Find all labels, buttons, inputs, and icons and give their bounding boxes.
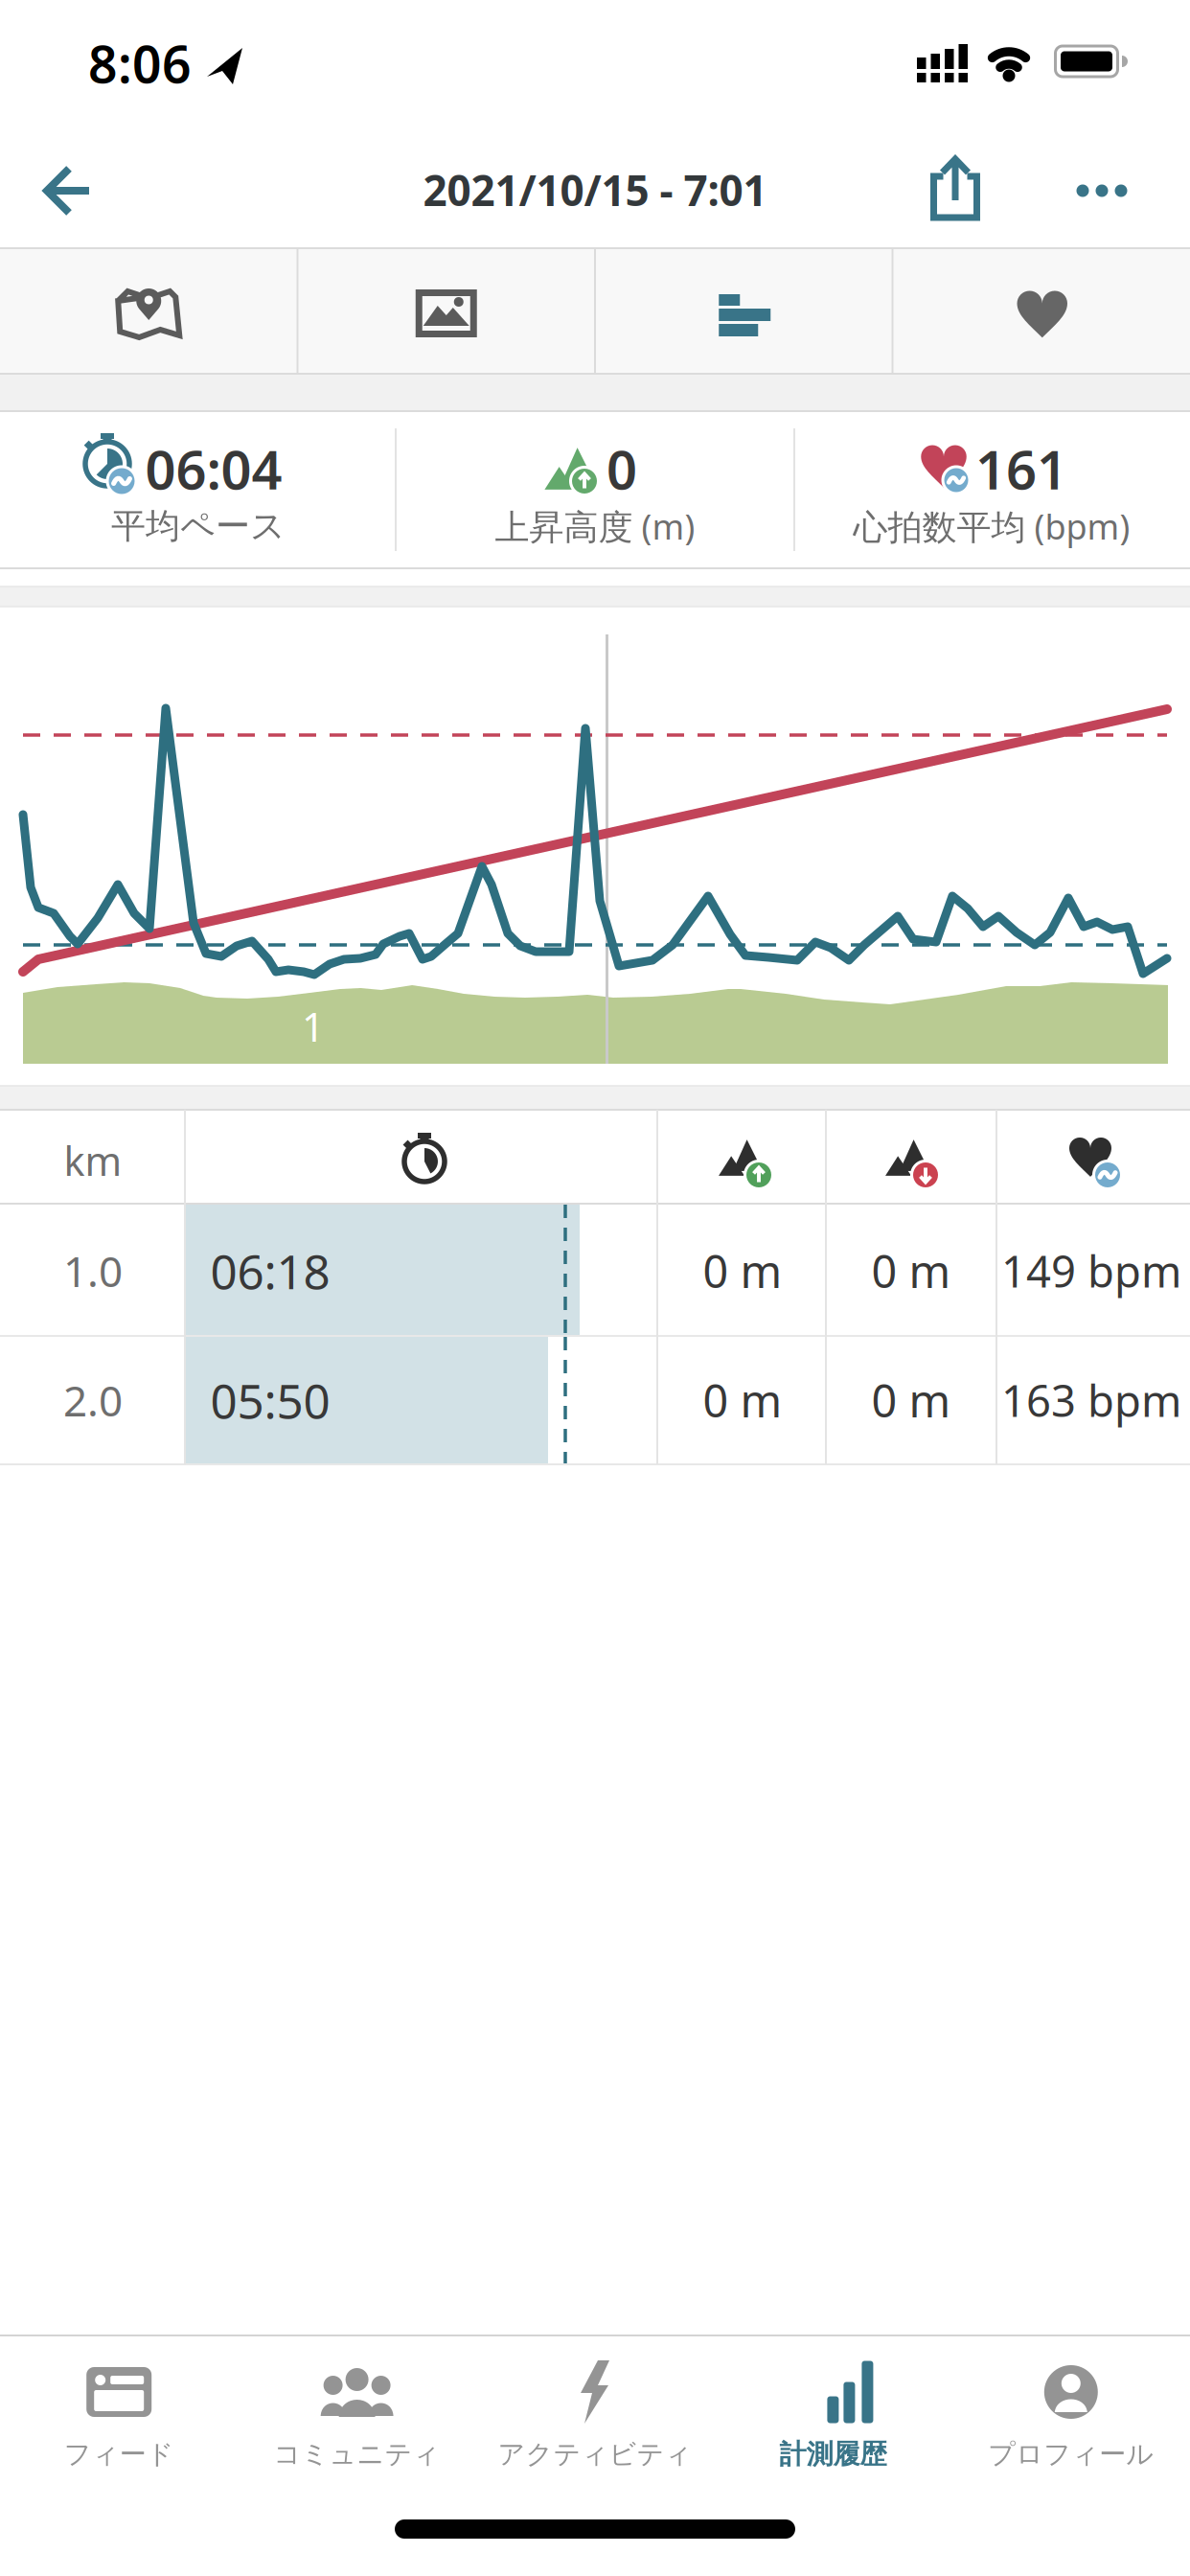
button[interactable]: Map xyxy=(0,248,297,375)
staticText: 161 xyxy=(975,433,1067,504)
button[interactable]: コミュニティ xyxy=(238,2335,476,2518)
button[interactable]: Back xyxy=(41,166,95,216)
staticText: 149 bpm xyxy=(1001,1242,1181,1300)
staticText: 2021/10/15 - 7:01 xyxy=(423,162,767,218)
staticText: 06:18 xyxy=(210,1239,330,1302)
staticText: 計測履歴 xyxy=(779,2438,887,2471)
button[interactable]: フィード xyxy=(0,2335,238,2518)
staticText: コミュニティ xyxy=(274,2438,440,2471)
staticText: 8:06 xyxy=(88,29,192,97)
staticText: 05:50 xyxy=(210,1369,330,1431)
staticText: フィード xyxy=(64,2438,174,2471)
button[interactable]: Photos xyxy=(298,248,595,375)
staticText: 1.0 xyxy=(63,1243,123,1299)
staticText: 2.0 xyxy=(63,1372,123,1428)
staticText: 0 m xyxy=(703,1241,782,1300)
button[interactable]: 計測履歴 xyxy=(714,2335,952,2518)
staticText: アクティビティ xyxy=(498,2438,692,2471)
staticText: 心拍数平均 (bpm) xyxy=(853,503,1130,549)
button[interactable]: More xyxy=(1076,184,1128,197)
staticText: 平均ペース xyxy=(111,505,286,547)
button[interactable]: Heart rate xyxy=(893,248,1190,375)
staticText: 0 m xyxy=(703,1370,782,1430)
button[interactable]: Share xyxy=(930,156,981,221)
button[interactable]: プロフィール xyxy=(952,2335,1190,2518)
staticText: 0 m xyxy=(871,1241,951,1300)
button[interactable]: Stats xyxy=(595,248,892,375)
button[interactable]: アクティビティ xyxy=(476,2335,714,2518)
staticText: 163 bpm xyxy=(1001,1371,1181,1429)
staticText: 1 xyxy=(302,1000,325,1053)
staticText: 0 m xyxy=(871,1370,951,1430)
staticText: km xyxy=(64,1134,122,1187)
staticText: 上昇高度 (m) xyxy=(495,503,695,549)
staticText: 06:04 xyxy=(145,433,282,504)
staticText: 0 xyxy=(606,433,637,504)
staticText: プロフィール xyxy=(988,2438,1154,2471)
